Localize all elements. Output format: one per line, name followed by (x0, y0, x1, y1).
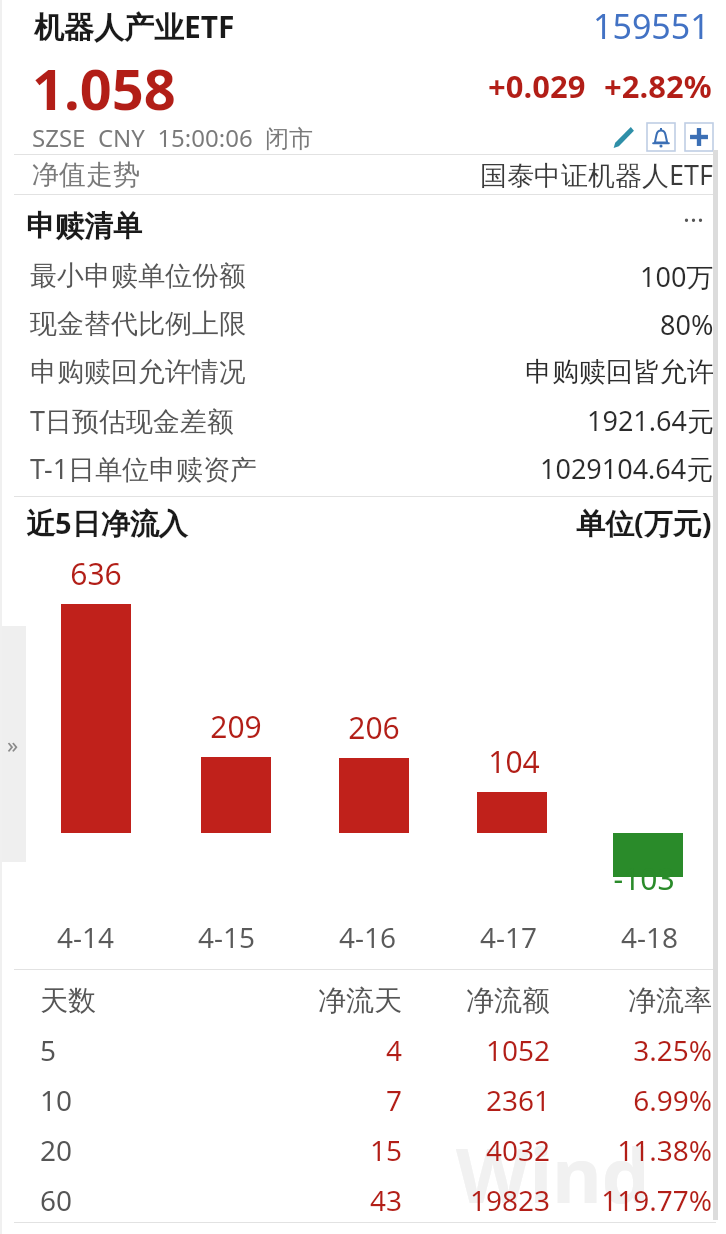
staticText: 净流率 (540, 983, 712, 1018)
staticText: +0.029 (488, 65, 586, 107)
staticText: 3.25% (540, 1031, 712, 1069)
staticText: 4 (262, 1031, 402, 1069)
staticText: 1.058 (32, 50, 176, 118)
staticText: 现金替代比例上限 (30, 307, 246, 341)
staticText: 申赎清单 (26, 208, 142, 245)
staticText: 206 (338, 707, 410, 748)
staticText: 申购赎回允许情况 (30, 355, 246, 389)
staticText: 最小申赎单位份额 (30, 259, 246, 293)
staticText: 单位(万元) (576, 503, 712, 543)
staticText: 5 (40, 1031, 57, 1069)
staticText: 119.77% (540, 1181, 712, 1219)
staticText: 19823 (400, 1181, 550, 1219)
staticText: SZSE CNY 15:00:06 闭市 (32, 121, 314, 154)
staticText: 11.38% (540, 1131, 712, 1169)
staticText: 7 (262, 1081, 402, 1119)
staticText: Wind (456, 1122, 650, 1226)
button[interactable]: T日预估现金差额 (0, 396, 726, 444)
button[interactable]: Edit (608, 122, 638, 152)
staticText: 国泰中证机器人ETF (480, 156, 714, 193)
staticText: 申购赎回皆允许 (525, 355, 714, 389)
button[interactable]: 净值走势 (0, 155, 726, 194)
staticText: 1921.64元 (587, 402, 714, 439)
button[interactable]: 最小申赎单位份额 (0, 252, 726, 300)
staticText: 20 (40, 1131, 73, 1169)
staticText: 636 (60, 553, 132, 594)
button[interactable]: 10 (0, 1075, 726, 1125)
staticText: 近5日净流入 (26, 503, 188, 543)
button[interactable]: 5 (0, 1025, 726, 1075)
staticText: 1052 (400, 1031, 550, 1069)
staticText: 60 (40, 1181, 73, 1219)
button[interactable]: Alert (646, 122, 676, 152)
staticText: 209 (200, 706, 272, 747)
staticText: 4-18 (621, 918, 679, 956)
staticText: 104 (478, 741, 550, 782)
button[interactable]: Expand panel (0, 626, 26, 862)
staticText: +2.82% (604, 65, 712, 107)
staticText: 10 (40, 1081, 73, 1119)
button[interactable]: 天数 (0, 975, 726, 1025)
staticText: 15 (262, 1131, 402, 1169)
staticText: -103 (608, 858, 680, 899)
staticText: » (7, 729, 19, 759)
staticText: T日预估现金差额 (30, 402, 235, 439)
button[interactable]: 现金替代比例上限 (0, 300, 726, 348)
staticText: 4032 (400, 1131, 550, 1169)
staticText: 43 (262, 1181, 402, 1219)
staticText: 净流额 (400, 983, 550, 1018)
staticText: T-1日单位申赎资产 (30, 450, 258, 487)
staticText: 4-17 (480, 918, 538, 956)
button[interactable]: 20 (0, 1125, 726, 1175)
staticText: 6.99% (540, 1081, 712, 1119)
button[interactable]: T-1日单位申赎资产 (0, 444, 726, 492)
staticText: 天数 (40, 983, 96, 1018)
staticText: 机器人产业ETF (34, 6, 235, 47)
button[interactable]: 申购赎回允许情况 (0, 348, 726, 396)
button[interactable]: 申赎清单 (0, 200, 726, 252)
staticText: 100万 (640, 258, 714, 295)
staticText: 4-14 (57, 918, 115, 956)
staticText: 159551 (593, 3, 710, 49)
button[interactable]: 60 (0, 1175, 726, 1225)
button[interactable]: Add (684, 122, 714, 152)
staticText: 净流天 (262, 983, 402, 1018)
staticText: 1029104.64元 (540, 450, 714, 487)
staticText: 4-15 (198, 918, 256, 956)
staticText: 2361 (400, 1081, 550, 1119)
staticText: 净值走势 (32, 158, 140, 192)
staticText: 4-16 (339, 918, 397, 956)
staticText: ··· (683, 201, 704, 236)
staticText: 80% (660, 306, 714, 343)
